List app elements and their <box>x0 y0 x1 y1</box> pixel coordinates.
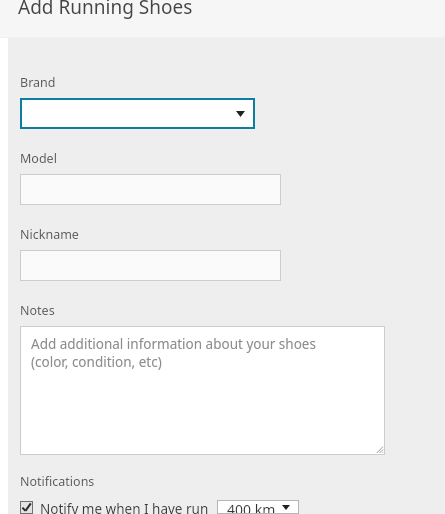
staticText: Add Running Shoes <box>18 0 193 20</box>
staticText: Notify me when I have run <box>40 500 209 514</box>
button[interactable]: Notify me toggle <box>20 501 33 514</box>
button[interactable]: Add additional information about your sh… <box>20 326 385 455</box>
button[interactable] <box>20 174 281 205</box>
staticText: Add additional information about your sh… <box>31 335 330 371</box>
staticText: Brand <box>20 74 56 91</box>
staticText: Notes <box>20 302 55 319</box>
staticText: 400 km <box>227 500 276 514</box>
staticText: Notifications <box>20 473 95 490</box>
button[interactable] <box>20 250 281 281</box>
staticText: Model <box>20 150 57 167</box>
staticText: Nickname <box>20 226 79 243</box>
button[interactable]: Distance dropdown, 400 km <box>217 500 299 514</box>
button[interactable]: Brand dropdown <box>20 98 255 129</box>
